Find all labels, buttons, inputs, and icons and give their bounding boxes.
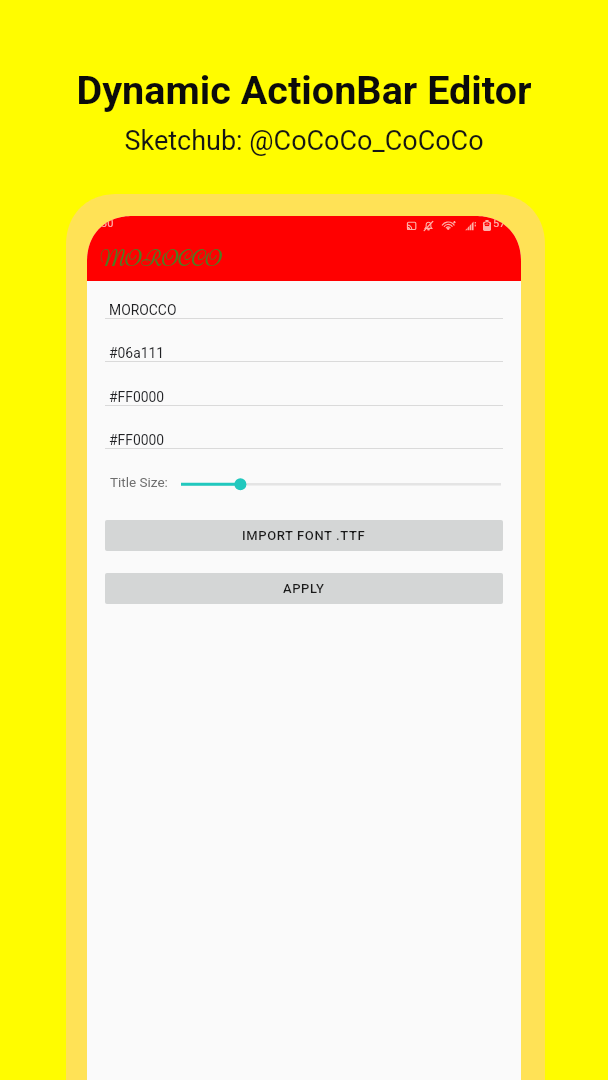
button[interactable]: #FF0000: [105, 416, 503, 449]
button[interactable]: [181, 472, 501, 496]
button[interactable]: #06a111: [105, 329, 503, 362]
button[interactable]: IMPORT FONT .TTF: [105, 520, 503, 551]
button[interactable]: #FF0000: [105, 373, 503, 406]
staticText: #FF0000: [109, 389, 165, 405]
button[interactable]: MOROCCO: [105, 286, 503, 319]
button[interactable]: APPLY: [105, 573, 503, 604]
other: Battery: [483, 220, 491, 231]
staticText: Sketchub: @CoCoCo_CoCoCo: [124, 125, 484, 157]
other: Cast screen: [407, 222, 416, 231]
staticText: APPLY: [283, 581, 325, 596]
staticText: 10:30: [87, 217, 114, 230]
other: Wi-Fi: [443, 220, 456, 231]
staticText: #06a111: [109, 345, 165, 361]
staticText: Dynamic ActionBar Editor: [76, 67, 532, 113]
staticText: IMPORT FONT .TTF: [242, 528, 366, 543]
staticText: #FF0000: [109, 432, 165, 448]
staticText: MOROCCO: [100, 245, 222, 273]
staticText: MOROCCO: [109, 302, 177, 318]
other: Notifications off: [424, 221, 433, 231]
staticText: 57: [493, 217, 506, 230]
staticText: Title Size:: [110, 474, 168, 490]
other: Mobile signal: [465, 221, 476, 231]
